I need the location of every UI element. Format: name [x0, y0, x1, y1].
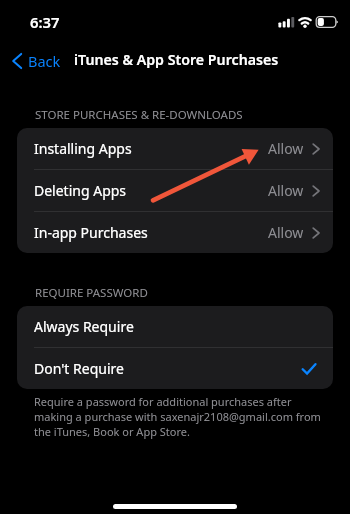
button[interactable]: In-app Purchases: [17, 212, 333, 253]
button[interactable]: Back: [7, 43, 67, 75]
staticText: 6:37: [30, 12, 60, 32]
staticText: STORE PURCHASES & RE-DOWNLOADS: [35, 107, 243, 123]
staticText: Back: [28, 51, 61, 71]
staticText: In-app Purchases: [34, 223, 148, 242]
staticText: REQUIRE PASSWORD: [35, 285, 148, 301]
staticText: Installing Apps: [34, 139, 132, 158]
staticText: Always Require: [34, 317, 134, 336]
button[interactable]: Don't Require: [17, 348, 333, 389]
staticText: Allow: [268, 181, 304, 200]
button[interactable]: Deleting Apps: [17, 170, 333, 211]
button[interactable]: Installing Apps: [17, 128, 333, 169]
staticText: Allow: [268, 139, 304, 158]
button[interactable]: Always Require: [17, 306, 333, 347]
staticText: iTunes & App Store Purchases: [74, 50, 279, 69]
staticText: Don't Require: [34, 359, 124, 378]
staticText: Require a password for additional purcha…: [34, 394, 324, 439]
staticText: Deleting Apps: [34, 181, 127, 200]
staticText: Allow: [268, 223, 304, 242]
